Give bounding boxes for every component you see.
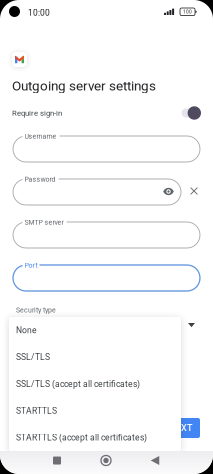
staticText: STARTTLS (16, 406, 57, 416)
staticText: SSL/TLS (accept all certificates) (16, 379, 140, 389)
staticText: SMTP server (24, 218, 63, 226)
button[interactable]: Require sign-in (12, 104, 201, 122)
staticText: Outgoing server settings (12, 78, 156, 94)
button[interactable]: Recent apps (42, 449, 72, 472)
staticText: 10:00 (28, 8, 50, 18)
staticText: Port (24, 261, 37, 269)
staticText: NEXT (170, 423, 193, 433)
button[interactable]: SSL/TLS (accept all certificates) (9, 371, 181, 397)
button[interactable]: STARTTLS (9, 397, 181, 424)
staticText: STARTTLS (accept all certificates) (16, 433, 147, 443)
staticText: None (16, 325, 37, 335)
button[interactable]: Home (91, 449, 121, 472)
button[interactable]: SSL/TLS (9, 344, 181, 371)
staticText: Require sign-in (12, 108, 62, 118)
button[interactable]: None (9, 317, 181, 344)
staticText: Username (24, 132, 56, 140)
button[interactable]: Back (140, 449, 170, 472)
staticText: SSL/TLS (16, 352, 50, 362)
button[interactable]: NEXT (163, 418, 200, 438)
button[interactable]: Show password (162, 186, 175, 197)
staticText: 100 (183, 9, 192, 15)
button[interactable]: Clear (188, 185, 200, 197)
button[interactable]: STARTTLS (accept all certificates) (9, 424, 181, 451)
staticText: Security type (16, 306, 56, 314)
staticText: Password (24, 175, 55, 183)
